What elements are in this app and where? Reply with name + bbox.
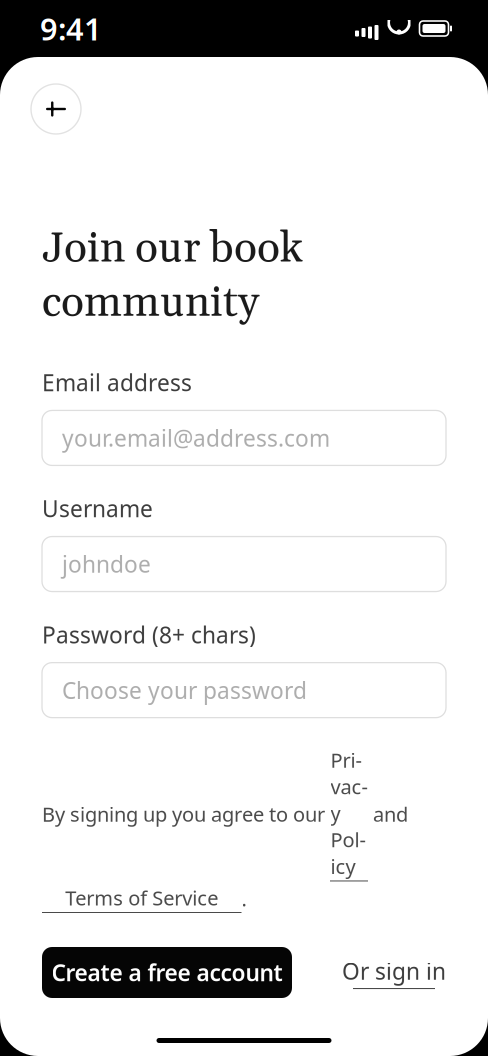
staticText: 9:41: [40, 8, 102, 49]
staticText: Password (8+ chars): [42, 619, 256, 650]
button[interactable]: Privacy Policy: [330, 747, 368, 881]
staticText: your.email@address.com: [62, 423, 330, 453]
button[interactable]: Or sign in: [342, 956, 446, 989]
staticText: By signing up you agree to our: [42, 801, 330, 827]
button[interactable]: Back: [31, 84, 81, 134]
button[interactable]: Create a free account: [42, 947, 292, 998]
button[interactable]: Terms of Service: [42, 884, 241, 913]
staticText: Create a free account: [51, 957, 282, 987]
staticText: Or sign in: [342, 956, 446, 986]
staticText: Choose your password: [62, 675, 307, 705]
staticText: Email address: [42, 367, 192, 397]
staticText: and: [368, 801, 408, 827]
staticText: Join our book community: [42, 222, 303, 330]
staticText: Terms of Service: [65, 884, 218, 911]
staticText: johndoe: [62, 549, 151, 579]
staticText: .: [241, 885, 246, 912]
staticText: Username: [42, 493, 153, 523]
staticText: Privacy Policy: [330, 747, 367, 879]
